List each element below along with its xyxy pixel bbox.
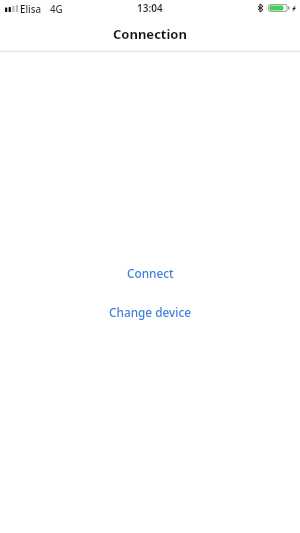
button[interactable]: Change device [0, 298, 300, 326]
other: Battery [268, 4, 290, 12]
staticText: 4G [50, 3, 63, 16]
other: Bluetooth [258, 4, 263, 12]
staticText: 13:04 [137, 1, 163, 15]
other: Charging [292, 5, 296, 12]
staticText: Elisa [20, 3, 42, 16]
button[interactable]: Connect [0, 259, 300, 287]
staticText: Connection [113, 25, 187, 43]
staticText: Connect [127, 265, 174, 281]
staticText: Change device [109, 304, 192, 320]
